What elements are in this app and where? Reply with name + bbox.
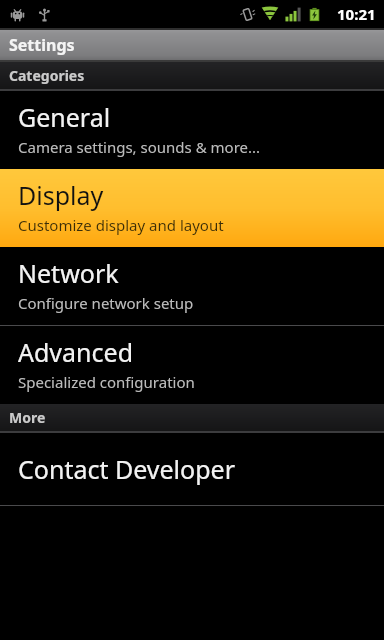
staticText: Customize display and layout xyxy=(18,215,224,235)
button[interactable]: Advanced xyxy=(0,326,384,404)
staticText: Camera settings, sounds & more... xyxy=(18,137,261,157)
staticText: Network xyxy=(18,256,119,290)
staticText: 10:21 xyxy=(337,4,376,24)
staticText: Advanced xyxy=(18,335,134,369)
staticText: Configure network setup xyxy=(18,293,194,313)
button[interactable]: General xyxy=(0,91,384,169)
staticText: General xyxy=(18,100,111,134)
staticText: Settings xyxy=(9,34,75,56)
staticText: Display xyxy=(18,178,104,212)
staticText: Categories xyxy=(9,66,85,85)
staticText: Specialized configuration xyxy=(18,372,195,392)
staticText: Contact Developer xyxy=(18,452,235,486)
button[interactable]: Network xyxy=(0,247,384,325)
staticText: More xyxy=(9,408,46,427)
button[interactable]: Contact Developer xyxy=(0,433,384,505)
button[interactable]: Display xyxy=(0,169,384,247)
